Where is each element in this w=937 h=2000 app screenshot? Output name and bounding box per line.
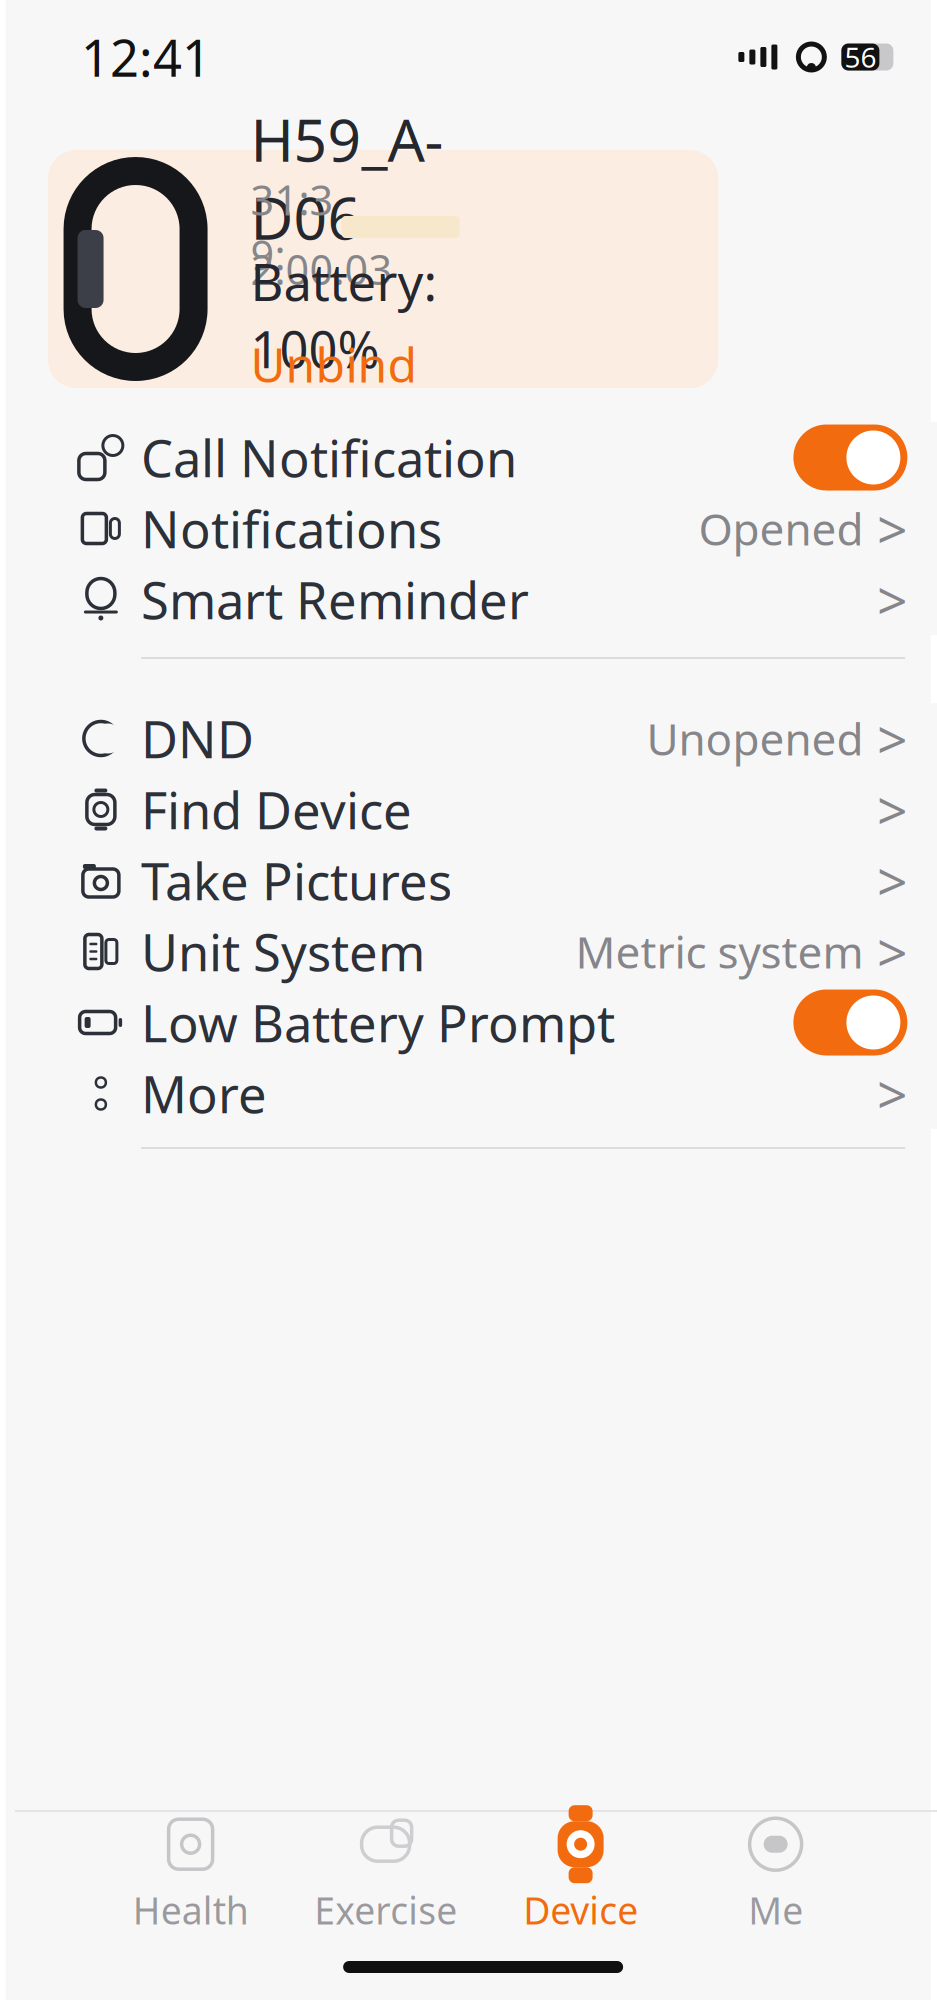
button[interactable]: DND (15, 703, 937, 774)
button[interactable]: Low Battery Prompt (15, 987, 937, 1058)
staticText: > (877, 493, 908, 564)
staticText: Low Battery Prompt (141, 989, 615, 1056)
staticText: > (877, 845, 908, 916)
staticText: Opened (698, 499, 863, 558)
staticText: > (877, 564, 908, 635)
staticText: 56 (844, 38, 876, 76)
staticText: Exercise (314, 1885, 457, 1935)
staticText: 2.00.03 (251, 242, 393, 296)
button[interactable]: Device (483, 1814, 678, 1932)
staticText: Device (523, 1885, 638, 1935)
button[interactable]: Notifications (15, 493, 937, 564)
button[interactable]: More (15, 1058, 937, 1129)
staticText: Unopened (646, 709, 863, 768)
staticText: Battery:100% (251, 248, 438, 382)
button[interactable]: Unbind (251, 339, 476, 389)
staticText: H59_AD06 (251, 100, 444, 256)
staticText: More (141, 1060, 267, 1127)
staticText: Metric system (575, 922, 863, 981)
button[interactable]: Health (93, 1814, 288, 1932)
staticText: Me (748, 1885, 803, 1935)
button[interactable]: Find Device (15, 774, 937, 845)
staticText: Smart Reminder (141, 566, 529, 633)
staticText: Health (133, 1885, 249, 1935)
staticText: 31:39: (251, 172, 334, 282)
staticText: > (877, 774, 908, 845)
button[interactable]: Unit System (15, 916, 937, 987)
staticText: Unit System (141, 918, 425, 985)
button[interactable]: Me (678, 1814, 873, 1932)
staticText: > (877, 1058, 908, 1129)
staticText: Notifications (141, 495, 442, 562)
button[interactable]: Take Pictures (15, 845, 937, 916)
staticText: Unbind (251, 332, 418, 396)
staticText: DND (141, 705, 254, 772)
staticText: Call Notification (141, 424, 517, 491)
staticText: Find Device (141, 776, 412, 843)
staticText: > (877, 703, 908, 774)
button[interactable]: Smart Reminder (15, 564, 937, 635)
staticText: 12:41 (81, 23, 211, 91)
button[interactable]: Exercise (288, 1814, 483, 1932)
staticText: Take Pictures (141, 847, 452, 914)
button[interactable]: Call Notification (15, 422, 937, 493)
staticText: > (877, 916, 908, 987)
